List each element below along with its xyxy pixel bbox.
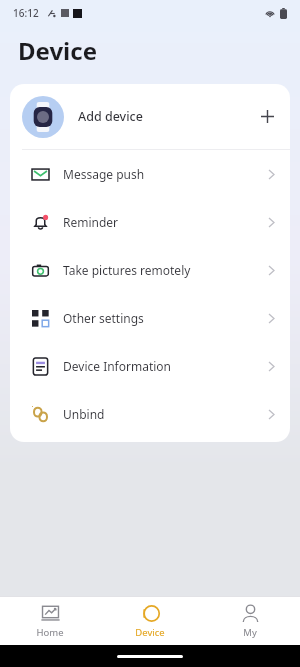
button[interactable]: Message push [10, 150, 290, 198]
button[interactable]: Add device [10, 84, 290, 149]
button[interactable]: My [200, 597, 300, 645]
staticText: Unbind [63, 406, 105, 422]
button[interactable]: Reminder [10, 198, 290, 246]
staticText: Reminder [63, 214, 119, 230]
staticText: Device Information [63, 358, 172, 374]
button[interactable]: Unbind [10, 390, 290, 438]
button[interactable]: Other settings [10, 294, 290, 342]
staticText: 16:12 [13, 6, 39, 20]
staticText: Device [18, 34, 98, 67]
staticText: Other settings [63, 310, 144, 326]
staticText: Add device [78, 108, 143, 125]
button[interactable]: Device Information [10, 342, 290, 390]
staticText: Take pictures remotely [63, 262, 191, 278]
button[interactable]: Device [100, 597, 200, 645]
button[interactable]: Home [0, 597, 100, 645]
staticText: Message push [63, 166, 145, 182]
staticText: Home [36, 626, 64, 639]
staticText: Device [135, 626, 165, 639]
button[interactable]: Take pictures remotely [10, 246, 290, 294]
staticText: My [243, 626, 257, 639]
